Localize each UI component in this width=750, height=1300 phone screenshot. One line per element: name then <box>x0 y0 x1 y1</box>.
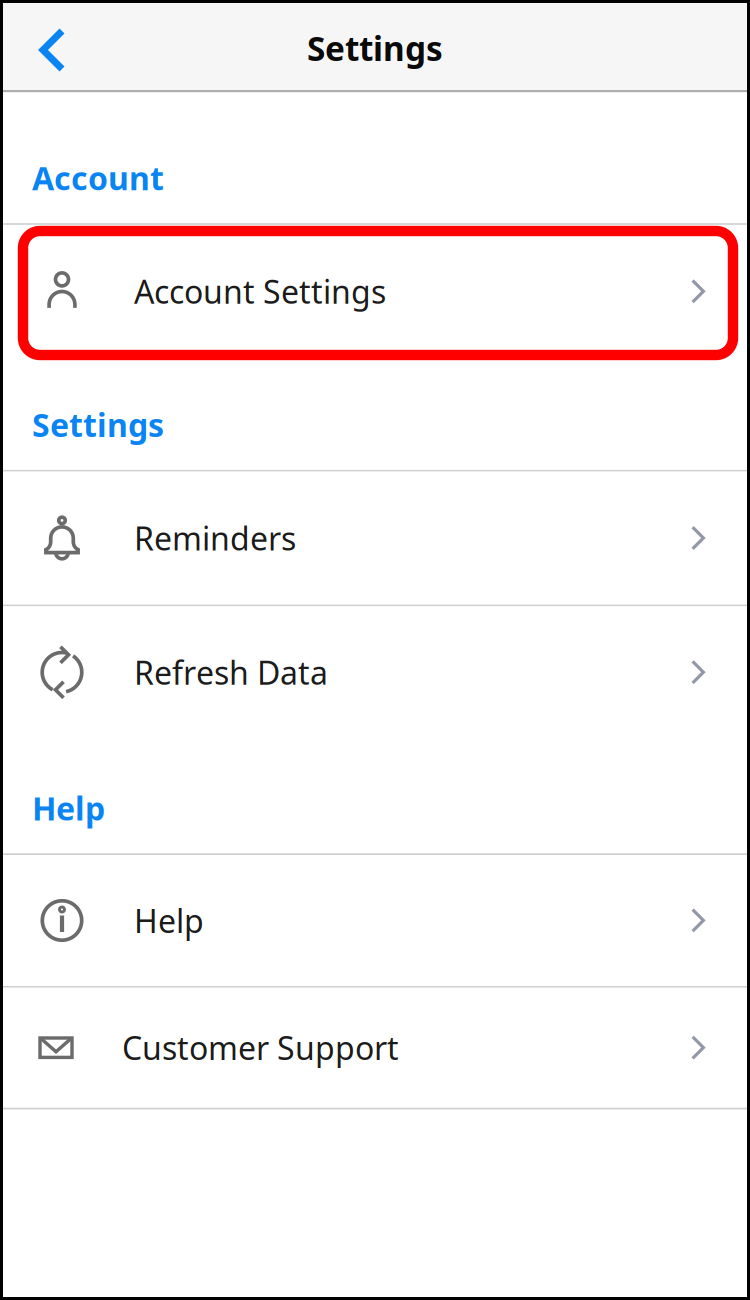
button[interactable]: Customer Support <box>0 988 750 1108</box>
staticText: Account <box>32 157 164 199</box>
button[interactable]: Reminders <box>0 472 750 605</box>
staticText: Account Settings <box>134 270 386 313</box>
staticText: Settings <box>307 26 443 70</box>
staticText: Refresh Data <box>134 651 328 694</box>
staticText: Help <box>32 787 105 829</box>
button[interactable]: Account Settings <box>0 225 750 358</box>
button[interactable]: Refresh Data <box>0 606 750 738</box>
staticText: Help <box>134 899 204 942</box>
button[interactable]: Back <box>0 0 80 90</box>
staticText: Customer Support <box>122 1026 399 1069</box>
button[interactable]: Help <box>0 855 750 986</box>
staticText: Settings <box>32 403 164 446</box>
staticText: Reminders <box>134 517 296 559</box>
